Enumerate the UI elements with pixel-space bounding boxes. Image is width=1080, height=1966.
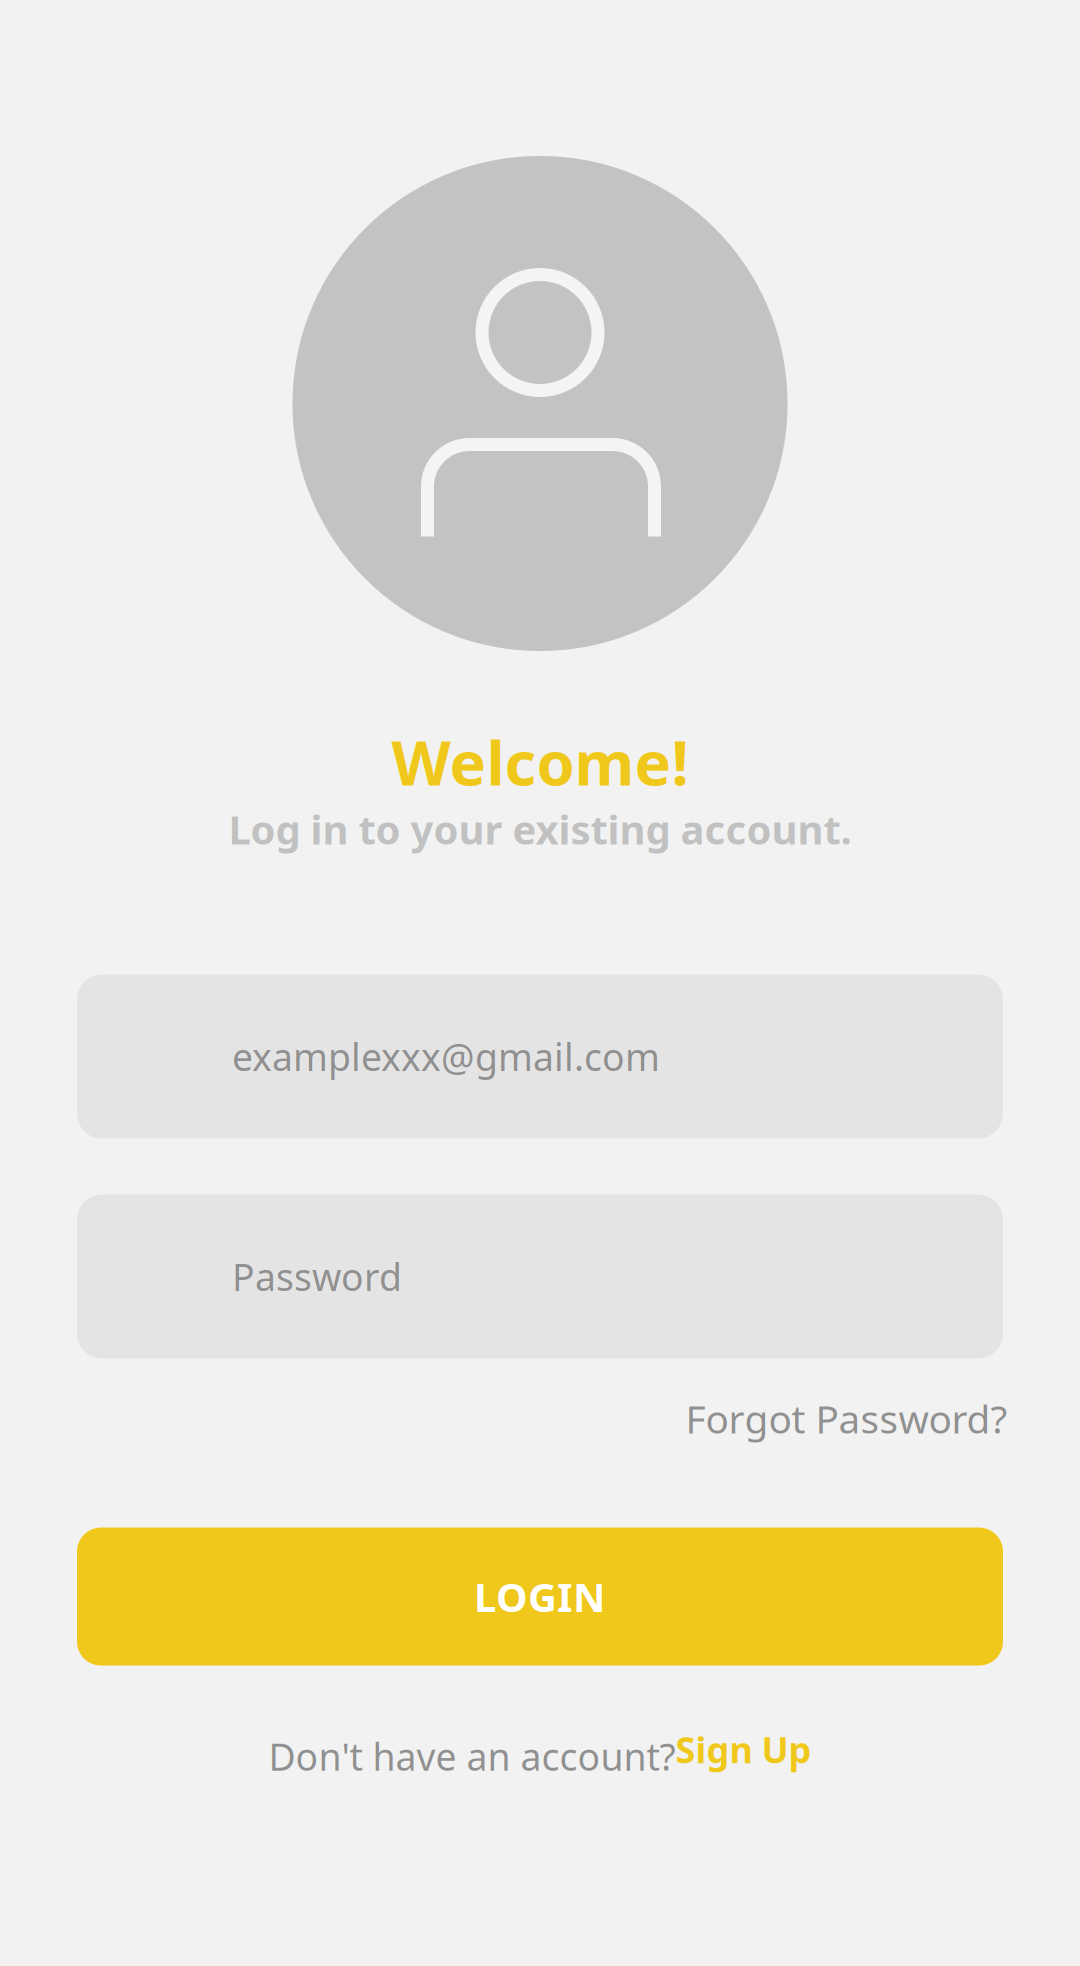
button[interactable]: Password <box>77 1195 1003 1359</box>
staticText: LOGIN <box>474 1570 606 1623</box>
button[interactable]: Sign Up <box>675 1732 811 1780</box>
staticText: Don't have an account? <box>268 1732 675 1781</box>
button[interactable]: examplexxx@gmail.com <box>77 975 1003 1139</box>
staticText: Welcome! <box>391 721 688 802</box>
staticText: Log in to your existing account. <box>228 802 851 855</box>
staticText: Sign Up <box>675 1725 811 1773</box>
staticText: Password <box>232 1252 402 1301</box>
button[interactable]: LOGIN <box>77 1528 1003 1666</box>
staticText: Forgot Password? <box>685 1393 1007 1444</box>
button[interactable]: Forgot Password? <box>75 1375 1004 1453</box>
staticText: examplexxx@gmail.com <box>232 1032 660 1081</box>
